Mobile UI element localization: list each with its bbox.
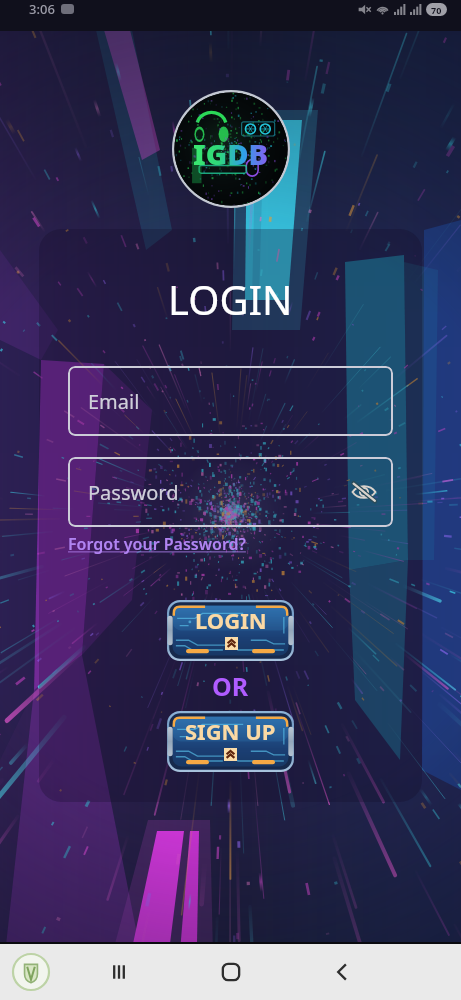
staticText: 3:06 bbox=[29, 0, 55, 18]
staticText: Email bbox=[88, 388, 140, 415]
button[interactable]: App badge bbox=[12, 953, 50, 991]
staticText: IGDB bbox=[193, 134, 269, 173]
button[interactable]: Password bbox=[68, 457, 393, 527]
staticText: LOGIN bbox=[168, 272, 293, 326]
staticText: LOGIN bbox=[195, 605, 267, 635]
button[interactable]: Recents bbox=[62, 944, 175, 1000]
button[interactable]: Forgot your Password? bbox=[68, 533, 246, 555]
button[interactable]: LOGIN bbox=[167, 600, 294, 661]
staticText: Password bbox=[88, 479, 179, 506]
button[interactable]: Home bbox=[175, 944, 287, 1000]
button[interactable]: Email bbox=[68, 366, 393, 436]
button[interactable]: Back bbox=[287, 944, 399, 1000]
button[interactable]: Show password bbox=[351, 479, 377, 505]
button[interactable]: SIGN UP bbox=[167, 711, 294, 772]
staticText: 70 bbox=[431, 4, 442, 16]
staticText: OR bbox=[212, 669, 249, 703]
staticText: SIGN UP bbox=[185, 716, 276, 746]
